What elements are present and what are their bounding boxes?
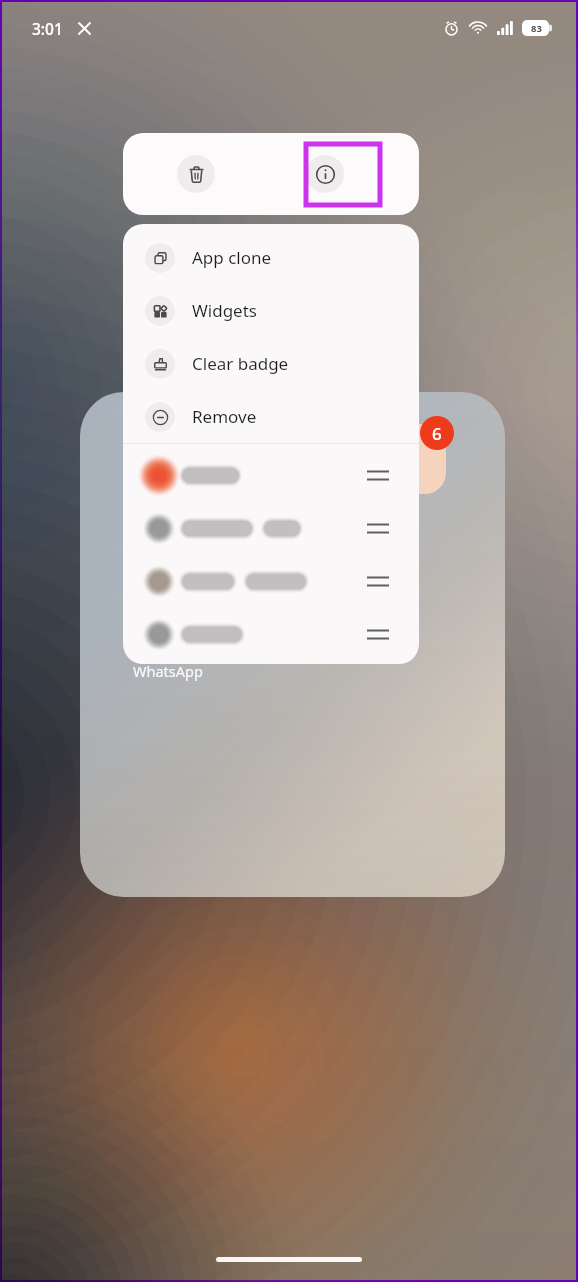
button[interactable]: App info	[306, 155, 344, 193]
staticText: 3:01	[32, 18, 63, 39]
button[interactable]: Uninstall	[177, 155, 215, 193]
staticText: 6	[432, 422, 442, 445]
button[interactable]: Widgets	[123, 284, 419, 337]
staticText: App clone	[192, 246, 272, 269]
staticText: Widgets	[192, 299, 257, 322]
staticText: 83	[531, 22, 542, 35]
button[interactable]: Clear badge	[123, 337, 419, 390]
staticText: Social	[226, 470, 297, 505]
staticText: Clear badge	[192, 352, 289, 375]
staticText: WhatsApp	[133, 661, 203, 681]
button[interactable]: App clone	[123, 231, 419, 284]
button[interactable]: Remove	[123, 390, 419, 443]
staticText: Remove	[192, 405, 257, 428]
